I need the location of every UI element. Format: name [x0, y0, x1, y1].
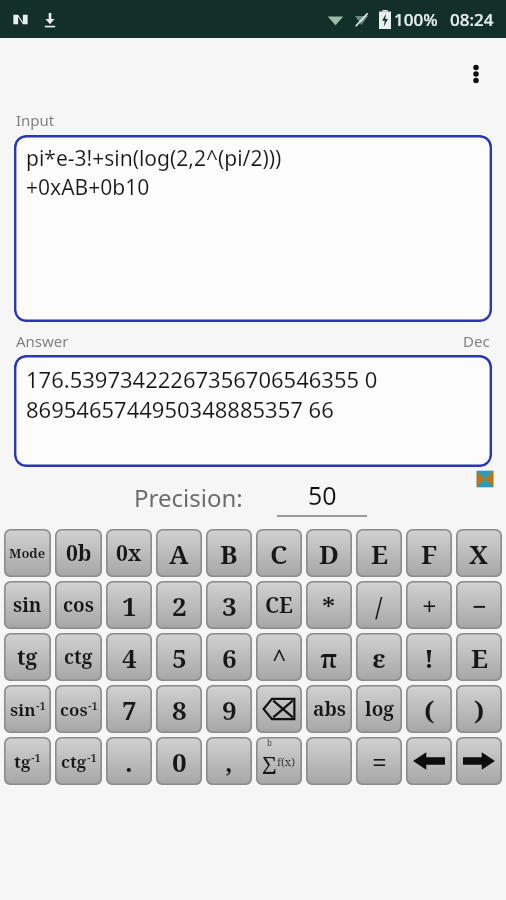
- button[interactable]: Sum function: [256, 737, 302, 785]
- staticText: 6: [222, 640, 237, 675]
- button[interactable]: D: [306, 529, 352, 577]
- staticText: ^: [272, 640, 287, 675]
- staticText: cos: [63, 592, 94, 618]
- staticText: 176.53973422267356706546355 0: [26, 364, 378, 394]
- button[interactable]: *: [306, 581, 352, 629]
- button[interactable]: abs: [306, 685, 352, 733]
- staticText: (: [424, 692, 435, 727]
- button[interactable]: pi*e-3!+sin(log(2,2^(pi/2))): [14, 135, 492, 322]
- button[interactable]: X: [456, 529, 502, 577]
- staticText: sin: [13, 592, 42, 618]
- button[interactable]: ^: [256, 633, 302, 681]
- button[interactable]: C: [256, 529, 302, 577]
- staticText: tg: [14, 750, 31, 773]
- button[interactable]: 1: [106, 581, 152, 629]
- button[interactable]: F: [406, 529, 452, 577]
- button[interactable]: Move right: [456, 737, 502, 785]
- staticText: -1: [87, 750, 97, 765]
- staticText: 8: [172, 692, 187, 727]
- button[interactable]: 3: [206, 581, 252, 629]
- button[interactable]: .: [106, 737, 152, 785]
- button[interactable]: Mode: [4, 529, 51, 577]
- button[interactable]: B: [206, 529, 252, 577]
- button[interactable]: cos: [55, 685, 102, 733]
- staticText: D: [319, 536, 339, 571]
- staticText: 5: [172, 640, 187, 675]
- button[interactable]: log: [356, 685, 402, 733]
- staticText: tg: [17, 643, 38, 672]
- button[interactable]: −: [456, 581, 502, 629]
- button[interactable]: 7: [106, 685, 152, 733]
- staticText: =: [372, 744, 387, 779]
- button[interactable]: ε: [356, 633, 402, 681]
- button[interactable]: 8: [156, 685, 202, 733]
- button[interactable]: /: [356, 581, 402, 629]
- button[interactable]: 6: [206, 633, 252, 681]
- button[interactable]: π: [306, 633, 352, 681]
- button[interactable]: !: [406, 633, 452, 681]
- button[interactable]: ): [456, 685, 502, 733]
- staticText: Input: [16, 110, 55, 130]
- button[interactable]: 0: [156, 737, 202, 785]
- staticText: pi*e-3!+sin(log(2,2^(pi/2))): [26, 144, 282, 173]
- button[interactable]: cos: [55, 581, 102, 629]
- staticText: 08:24: [450, 8, 494, 31]
- button[interactable]: 50: [277, 478, 367, 517]
- button[interactable]: 0b: [55, 529, 102, 577]
- button[interactable]: More options: [454, 52, 498, 96]
- staticText: +: [422, 588, 437, 623]
- button[interactable]: Backspace: [256, 685, 302, 733]
- staticText: 1: [122, 588, 137, 623]
- staticText: CE: [265, 591, 293, 620]
- button[interactable]: +: [406, 581, 452, 629]
- staticText: 2: [172, 588, 187, 623]
- button[interactable]: sin: [4, 581, 51, 629]
- button[interactable]: =: [356, 737, 402, 785]
- staticText: ): [474, 692, 485, 727]
- staticText: 9: [222, 692, 237, 727]
- button[interactable]: 9: [206, 685, 252, 733]
- staticText: -1: [36, 698, 46, 713]
- staticText: a: [267, 781, 272, 785]
- staticText: A: [169, 536, 189, 571]
- button[interactable]: 5: [156, 633, 202, 681]
- staticText: π: [320, 640, 338, 675]
- staticText: 0b: [66, 539, 92, 568]
- staticText: ε: [372, 640, 386, 675]
- button[interactable]: 0x: [106, 529, 152, 577]
- staticText: Precision:: [134, 481, 243, 514]
- button[interactable]: tg: [4, 737, 51, 785]
- button[interactable]: [306, 737, 352, 785]
- button[interactable]: 4: [106, 633, 152, 681]
- staticText: 0x: [116, 539, 142, 568]
- staticText: −: [472, 588, 487, 623]
- staticText: b: [267, 737, 272, 748]
- staticText: F: [421, 536, 438, 571]
- staticText: -1: [31, 750, 41, 765]
- button[interactable]: ,: [206, 737, 252, 785]
- staticText: X: [469, 536, 489, 571]
- button[interactable]: ctg: [55, 737, 102, 785]
- staticText: ctg: [61, 750, 87, 773]
- button[interactable]: tg: [4, 633, 51, 681]
- button[interactable]: A: [156, 529, 202, 577]
- button[interactable]: E: [356, 529, 402, 577]
- staticText: 3: [222, 588, 237, 623]
- button[interactable]: E: [456, 633, 502, 681]
- button[interactable]: Move left: [406, 737, 452, 785]
- staticText: -1: [88, 698, 98, 713]
- staticText: .: [125, 744, 133, 779]
- staticText: ,: [225, 744, 233, 779]
- button[interactable]: 2: [156, 581, 202, 629]
- staticText: B: [220, 536, 238, 571]
- staticText: Mode: [9, 544, 46, 562]
- staticText: Σ: [262, 748, 277, 781]
- button[interactable]: CE: [256, 581, 302, 629]
- staticText: cos: [60, 698, 88, 721]
- staticText: *: [322, 588, 336, 623]
- button[interactable]: (: [406, 685, 452, 733]
- staticText: ctg: [64, 644, 93, 670]
- button[interactable]: 176.53973422267356706546355 0: [14, 355, 492, 467]
- button[interactable]: sin: [4, 685, 51, 733]
- button[interactable]: ctg: [55, 633, 102, 681]
